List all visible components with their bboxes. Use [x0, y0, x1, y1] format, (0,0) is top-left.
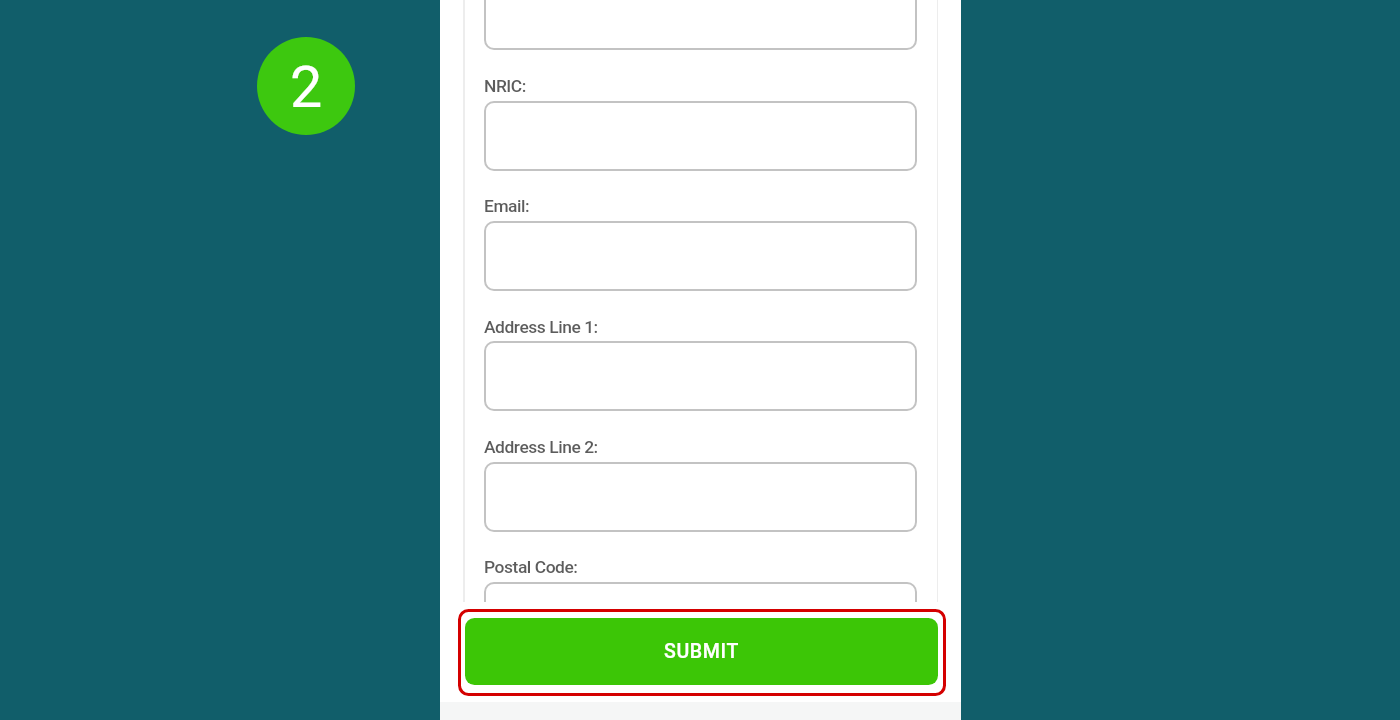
staticText: Address Line 1: [484, 317, 598, 337]
button[interactable]: Step 2 [257, 37, 355, 135]
staticText: Postal Code: [484, 557, 578, 577]
staticText: NRIC: [484, 76, 526, 96]
staticText: SUBMIT [664, 640, 739, 663]
staticText: Email: [484, 196, 530, 216]
button[interactable]: NRIC input field [484, 101, 917, 171]
button[interactable]: Address Line 1 input field [484, 341, 917, 411]
button[interactable]: Full Name input field [484, 0, 917, 50]
button[interactable]: Postal Code input field [484, 582, 917, 602]
staticText: 2 [290, 54, 323, 121]
button[interactable]: Email input field [484, 221, 917, 291]
button[interactable]: Address Line 2 input field [484, 462, 917, 532]
button[interactable]: SUBMIT [465, 618, 938, 685]
staticText: Address Line 2: [484, 437, 598, 457]
